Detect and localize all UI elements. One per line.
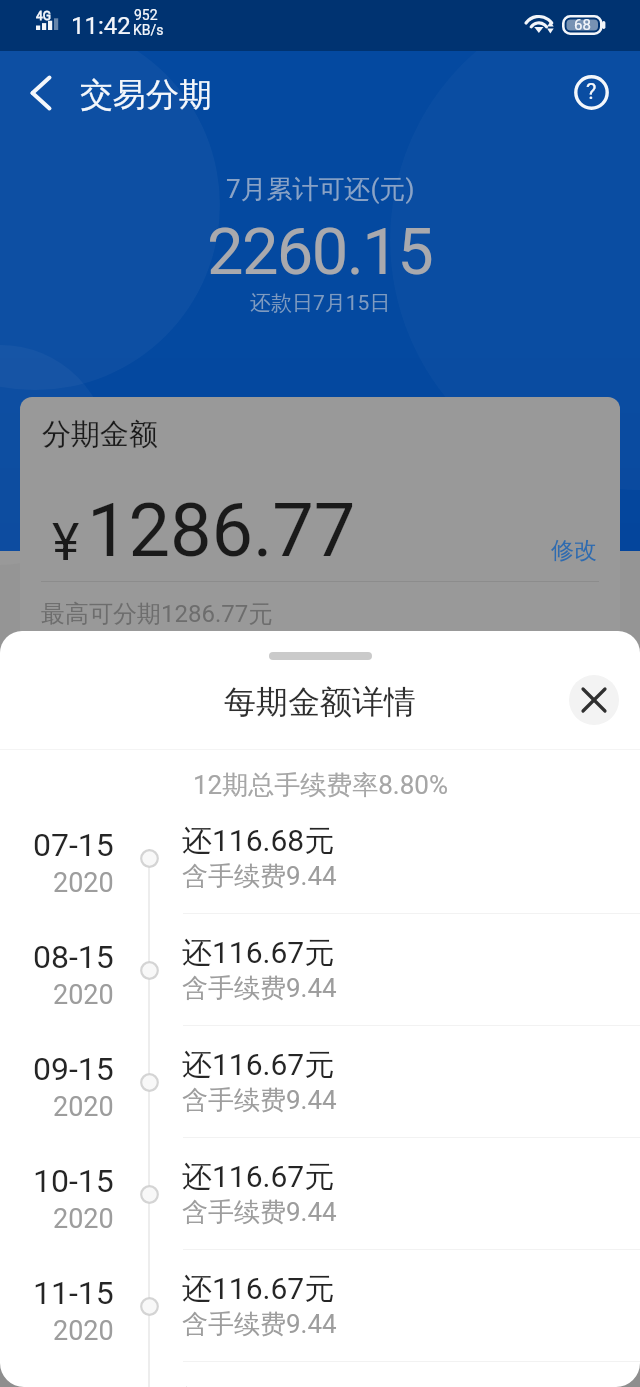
staticText: 11:42	[71, 12, 131, 40]
staticText: 还款日7月15日	[250, 290, 391, 316]
button[interactable]: 12-15	[0, 1362, 640, 1387]
staticText: 68	[574, 16, 591, 34]
staticText: 952	[134, 7, 158, 23]
staticText: ¥	[52, 512, 80, 573]
button[interactable]: 11-15	[0, 1250, 640, 1362]
staticText: 分期金额	[42, 416, 158, 453]
staticText: 含手续费9.44	[182, 860, 337, 893]
staticText: 10-15	[33, 1162, 114, 1200]
staticText: 7月累计可还(元)	[226, 173, 415, 206]
button[interactable]: Help	[564, 65, 618, 119]
staticText: 每期金额详情	[224, 682, 416, 722]
button[interactable]: Close	[569, 675, 619, 725]
staticText: 还116.67元	[182, 934, 335, 972]
button[interactable]: 07-15	[0, 802, 640, 914]
staticText: 2020	[53, 979, 114, 1011]
staticText: 修改	[551, 536, 597, 565]
staticText: ?	[586, 79, 597, 105]
staticText: 2260.15	[207, 214, 433, 290]
staticText: 还116.67元	[182, 1158, 335, 1196]
staticText: 最高可分期1286.77元	[41, 599, 273, 629]
staticText: 12期总手续费率8.80%	[193, 769, 448, 802]
button[interactable]: 09-15	[0, 1026, 640, 1138]
button[interactable]: 10-15	[0, 1138, 640, 1250]
staticText: 1286.77	[87, 487, 356, 574]
staticText: 交易分期	[80, 74, 212, 116]
staticText: 还116.67元	[182, 1270, 335, 1308]
button[interactable]: 08-15	[0, 914, 640, 1026]
staticText: 11-15	[33, 1274, 114, 1312]
staticText: 还116.68元	[182, 822, 335, 860]
staticText: 含手续费9.44	[182, 1196, 337, 1229]
staticText: 2020	[53, 867, 114, 899]
staticText: 2020	[53, 1203, 114, 1235]
staticText: 含手续费9.44	[182, 1308, 337, 1341]
staticText: 2020	[53, 1315, 114, 1347]
staticText: 还116.67元	[182, 1046, 335, 1084]
staticText: 09-15	[33, 1050, 114, 1088]
staticText: KB/s	[133, 22, 164, 38]
staticText: 含手续费9.44	[182, 972, 337, 1005]
button[interactable]: 修改	[545, 530, 603, 571]
button[interactable]: Back	[14, 66, 68, 120]
staticText: 含手续费9.44	[182, 1084, 337, 1117]
staticText: 07-15	[33, 826, 114, 864]
staticText: 2020	[53, 1091, 114, 1123]
staticText: 08-15	[33, 938, 114, 976]
staticText: 4G	[36, 9, 51, 23]
